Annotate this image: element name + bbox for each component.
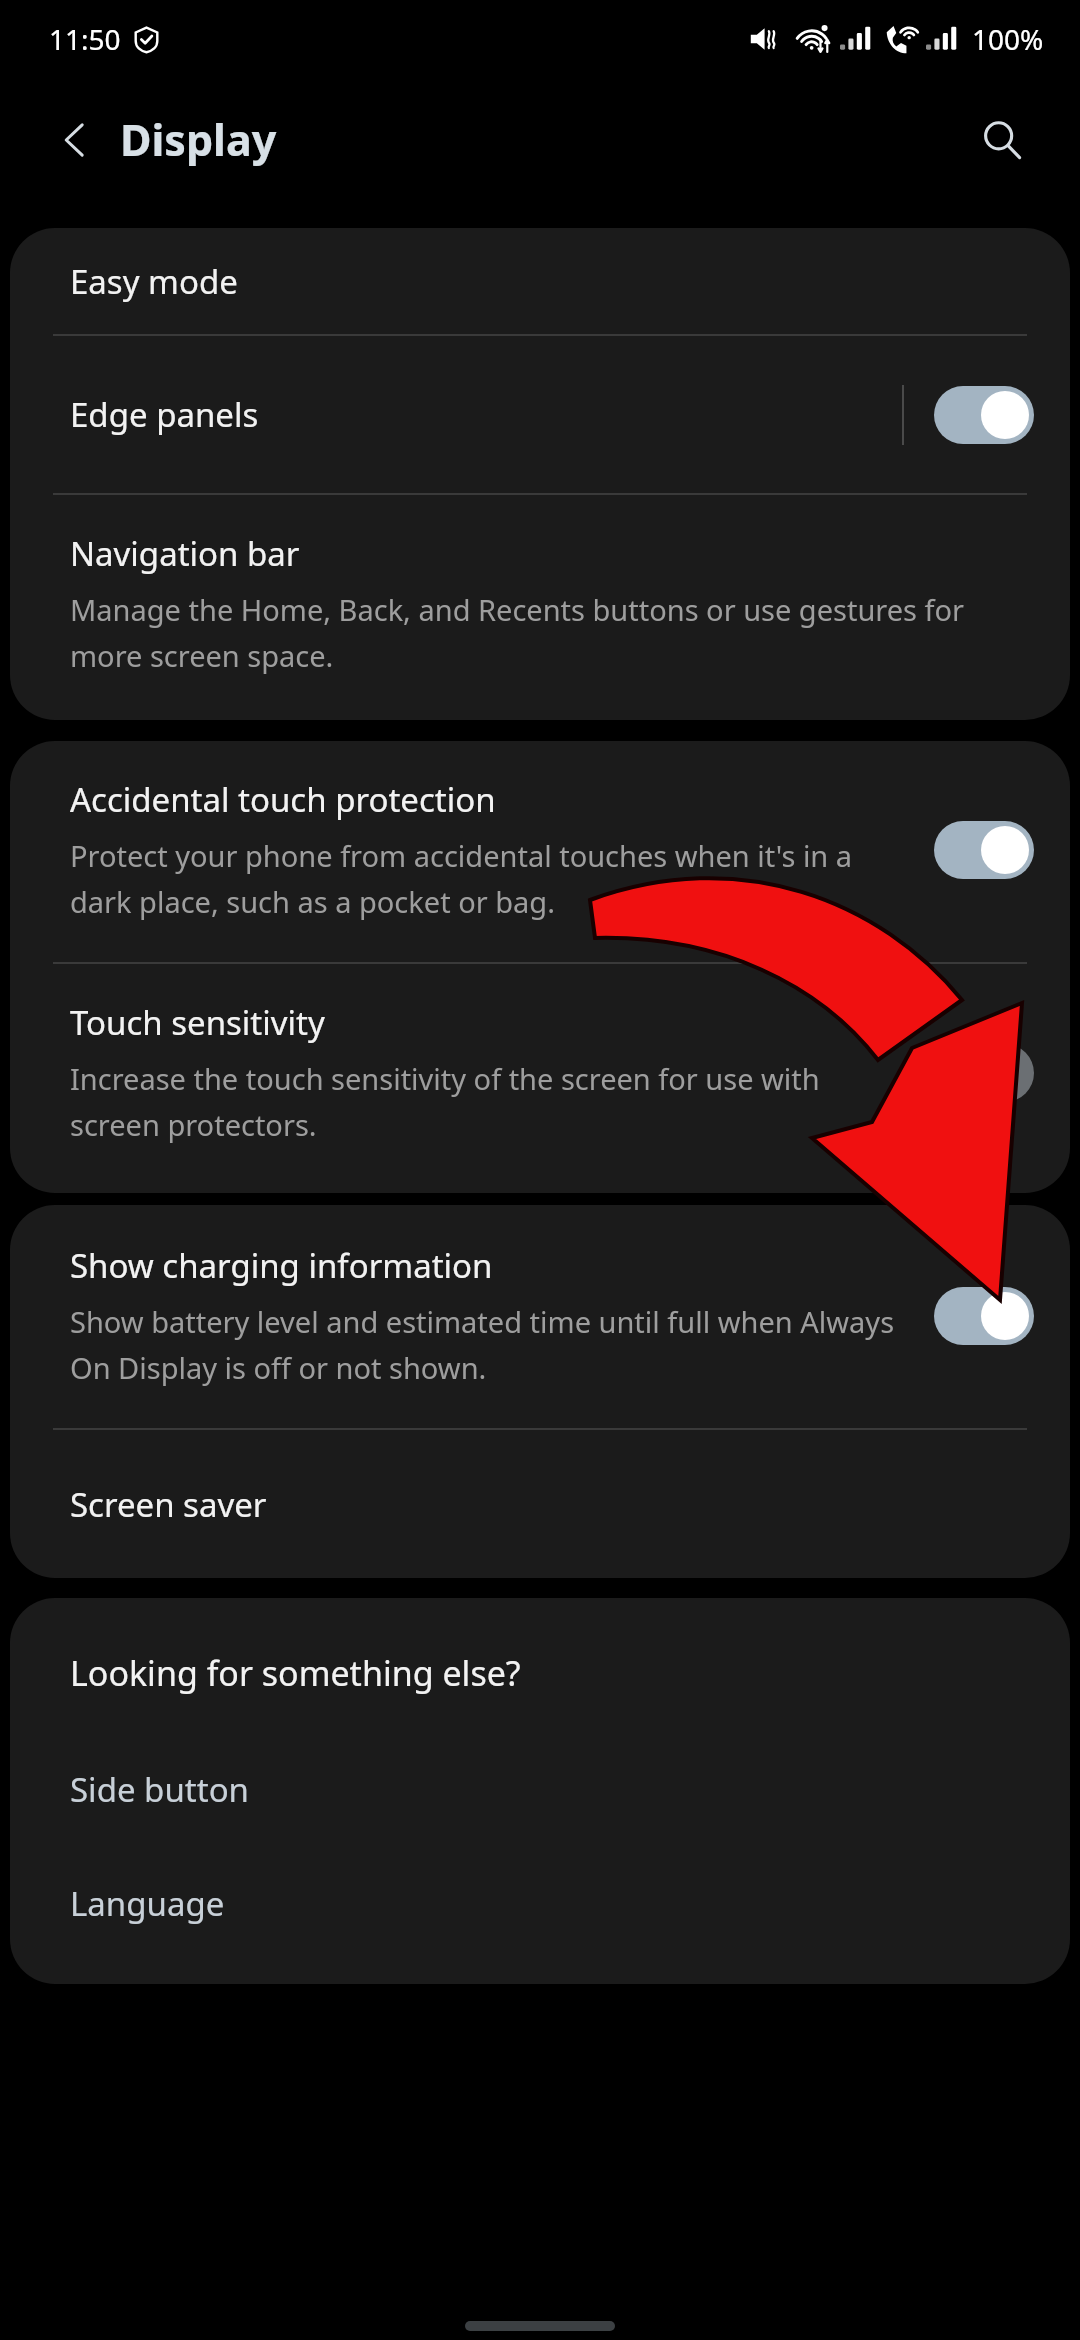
staticText: 11:50 <box>49 20 121 58</box>
staticText: 100% <box>972 20 1044 58</box>
staticText: Show charging information <box>70 1243 493 1288</box>
staticText: Looking for something else? <box>70 1650 521 1696</box>
button[interactable]: Navigation bar <box>10 495 1070 720</box>
staticText: Increase the touch sensitivity of the sc… <box>70 1059 910 1145</box>
button[interactable]: Side button <box>10 1748 1070 1830</box>
button[interactable]: Switch off <box>934 1044 1034 1102</box>
staticText: Manage the Home, Back, and Recents butto… <box>70 590 1010 676</box>
button[interactable]: Back <box>46 111 104 169</box>
button[interactable]: Show charging information <box>10 1205 1070 1428</box>
staticText: Accidental touch protection <box>70 777 496 822</box>
staticText: Protect your phone from accidental touch… <box>70 836 910 922</box>
staticText: Edge panels <box>70 392 259 437</box>
staticText: Display <box>120 110 277 169</box>
staticText: Language <box>70 1881 225 1926</box>
button[interactable]: Search <box>970 108 1034 172</box>
staticText: Screen saver <box>70 1482 267 1527</box>
button[interactable]: Touch sensitivity <box>10 964 1070 1193</box>
staticText: Touch sensitivity <box>70 1000 325 1045</box>
button[interactable]: Edge panels <box>10 336 1070 493</box>
staticText: Show battery level and estimated time un… <box>70 1302 910 1388</box>
button[interactable]: Easy mode <box>10 228 1070 334</box>
button[interactable]: Language <box>10 1862 1070 1944</box>
button[interactable]: Switch on <box>934 1287 1034 1345</box>
button[interactable]: Switch on <box>934 386 1034 444</box>
button[interactable]: Switch on <box>934 821 1034 879</box>
staticText: Side button <box>70 1767 249 1812</box>
staticText: Navigation bar <box>70 531 300 576</box>
staticText: Easy mode <box>70 259 238 304</box>
button[interactable]: Accidental touch protection <box>10 741 1070 962</box>
button[interactable]: Screen saver <box>10 1430 1070 1578</box>
